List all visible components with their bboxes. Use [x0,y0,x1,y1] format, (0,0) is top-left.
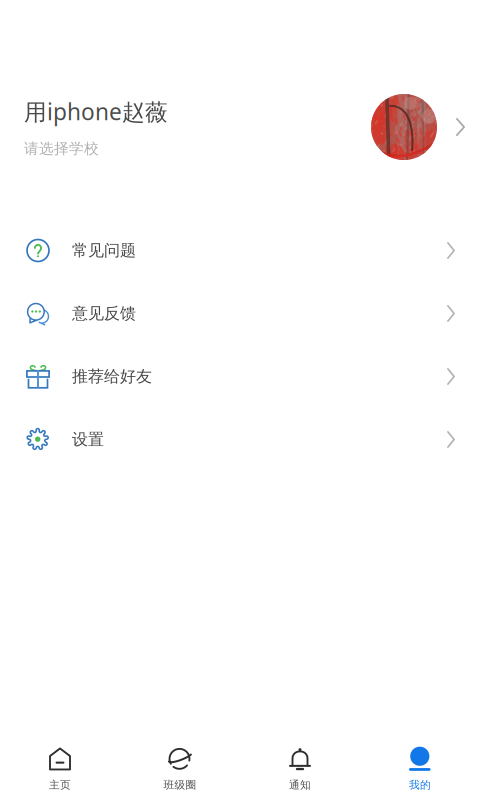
button[interactable]: 用iphone赵薇 [0,0,480,170]
staticText: 请选择学校 [24,139,99,157]
staticText: 班级圈 [163,778,196,791]
staticText: 用iphone赵薇 [24,96,168,126]
staticText: 通知 [289,778,311,791]
staticText: 推荐给好友 [72,367,152,386]
staticText: 我的 [409,778,431,791]
staticText: 意见反馈 [72,304,136,323]
staticText: 设置 [72,430,104,449]
staticText: 常见问题 [72,241,136,260]
button[interactable]: 我的 [360,737,480,799]
button[interactable]: 设置 [0,408,480,471]
button[interactable]: 推荐给好友 [0,345,480,408]
button[interactable]: 主页 [0,737,120,799]
button[interactable]: 常见问题 [0,219,480,282]
staticText: 主页 [49,778,71,791]
button[interactable]: 通知 [240,737,360,799]
button[interactable]: 班级圈 [120,737,240,799]
button[interactable]: 意见反馈 [0,282,480,345]
